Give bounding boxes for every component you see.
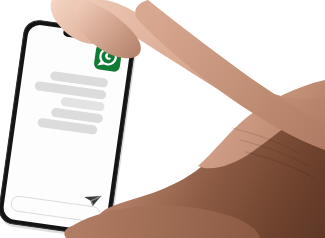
button[interactable]: Hand holding phone showing WhatsApp chat xyxy=(0,0,325,238)
